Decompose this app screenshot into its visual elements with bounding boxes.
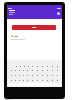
button[interactable]: [14, 64, 18, 68]
button[interactable]: [30, 68, 35, 73]
button[interactable]: [26, 64, 30, 68]
button[interactable]: [25, 78, 30, 82]
button[interactable]: [21, 68, 25, 73]
button[interactable]: [40, 68, 45, 73]
button[interactable]: [21, 73, 25, 78]
button[interactable]: [25, 68, 30, 73]
button[interactable]: [13, 73, 17, 78]
button[interactable]: [35, 78, 40, 82]
button[interactable]: [30, 64, 35, 68]
button[interactable]: [35, 64, 40, 68]
button[interactable]: [50, 78, 55, 82]
button[interactable]: [9, 68, 13, 73]
button[interactable]: [40, 64, 45, 68]
button[interactable]: [35, 68, 40, 73]
button[interactable]: [13, 68, 17, 73]
button[interactable]: [45, 78, 50, 82]
button[interactable]: [45, 64, 50, 68]
button[interactable]: [30, 73, 35, 78]
button[interactable]: [17, 78, 21, 82]
button[interactable]: [22, 64, 26, 68]
button[interactable]: [40, 73, 45, 78]
button[interactable]: [45, 73, 50, 78]
button[interactable]: [30, 78, 35, 82]
button[interactable]: Account: [57, 12, 60, 15]
button[interactable]: [55, 78, 60, 82]
button[interactable]: [45, 68, 50, 73]
button[interactable]: [17, 73, 21, 78]
button[interactable]: [55, 64, 60, 68]
button[interactable]: [21, 78, 25, 82]
button[interactable]: [55, 68, 60, 73]
button[interactable]: [25, 73, 30, 78]
button[interactable]: [9, 78, 13, 82]
button[interactable]: [17, 68, 21, 73]
button[interactable]: [50, 64, 55, 68]
button[interactable]: [50, 73, 55, 78]
button[interactable]: [9, 73, 13, 78]
button[interactable]: [35, 73, 40, 78]
button[interactable]: [12, 25, 56, 30]
button[interactable]: [40, 78, 45, 82]
button[interactable]: [11, 35, 62, 40]
button[interactable]: [13, 78, 17, 82]
button[interactable]: [50, 68, 55, 73]
button[interactable]: [55, 73, 60, 78]
button[interactable]: [18, 64, 22, 68]
